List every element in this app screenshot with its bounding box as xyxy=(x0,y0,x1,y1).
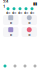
staticText: xx xyxy=(28,33,30,37)
staticText: abc xyxy=(18,11,22,15)
staticText: xx xyxy=(28,21,30,25)
staticText: xx xyxy=(10,21,12,25)
staticText: xx xyxy=(10,33,12,37)
staticText: abc xyxy=(30,11,34,15)
staticText: 9:41 xyxy=(3,0,8,9)
staticText: abc xyxy=(6,11,10,15)
staticText: ▮▮ xyxy=(33,1,37,6)
staticText: abc xyxy=(24,11,28,15)
staticText: abc xyxy=(12,11,16,15)
